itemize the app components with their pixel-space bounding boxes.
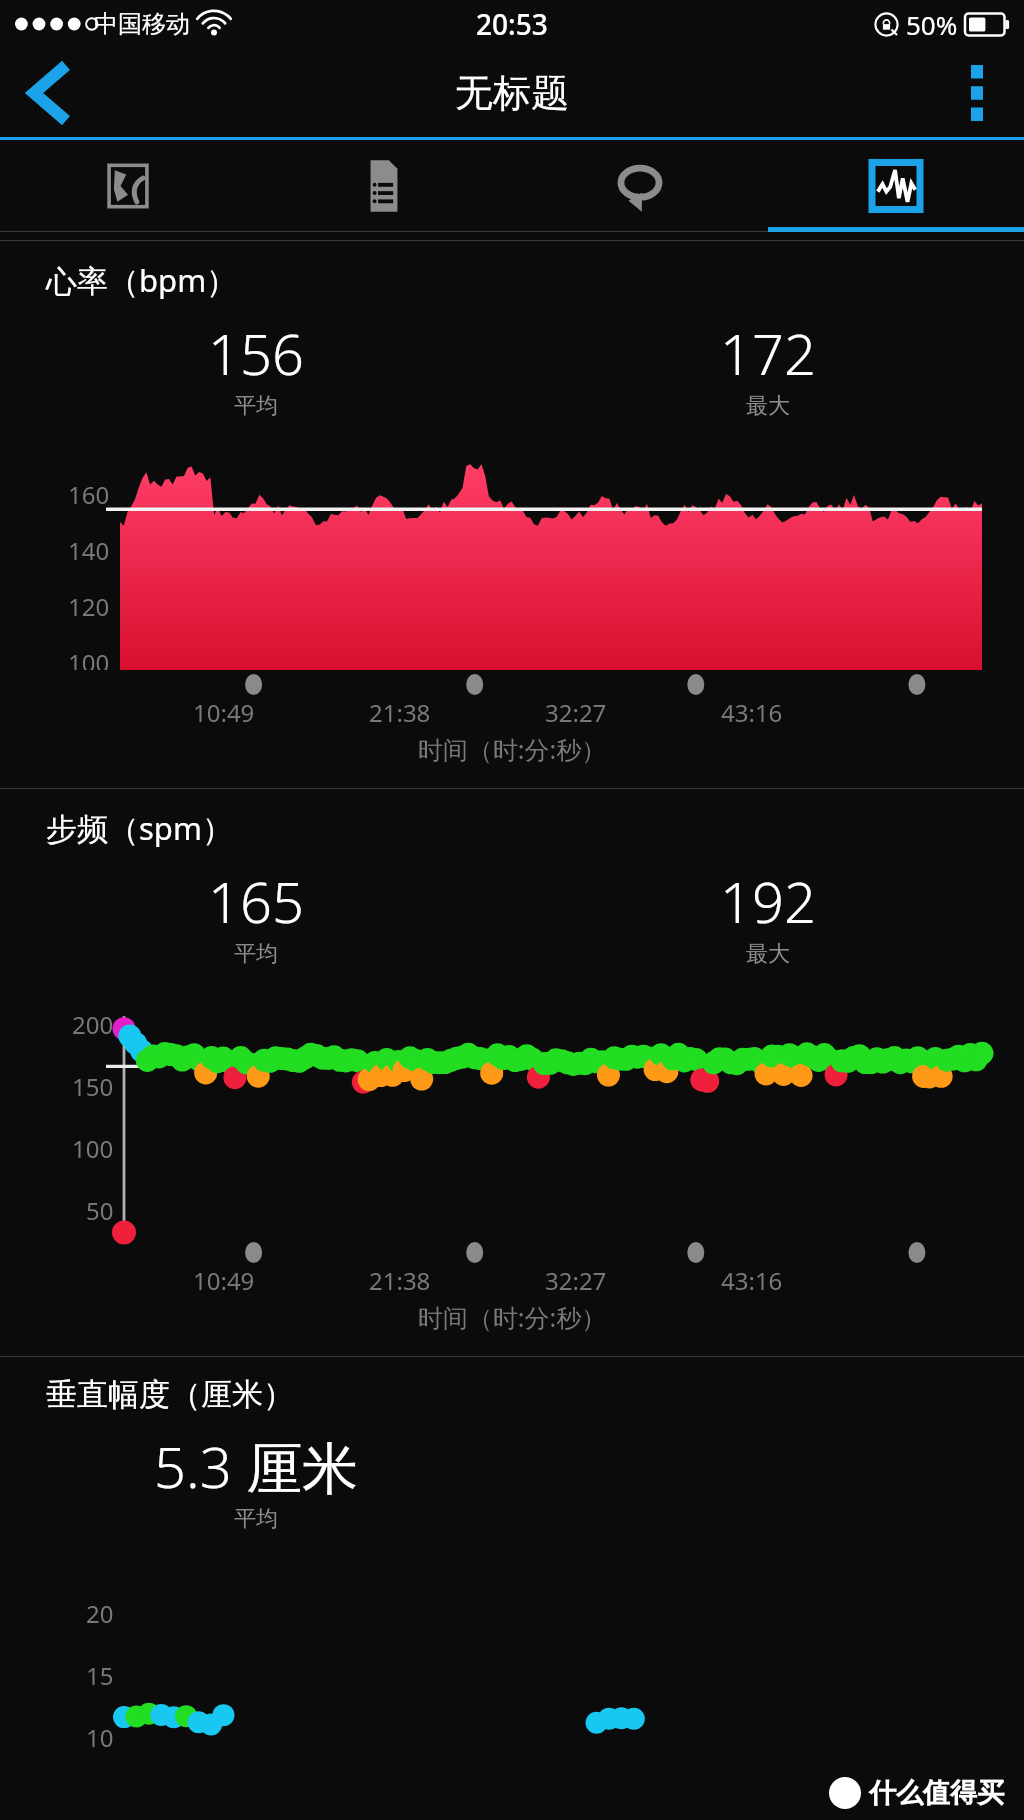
button[interactable]: More options <box>930 48 1024 137</box>
staticText: 165 <box>208 863 304 939</box>
staticText: 平均 <box>234 940 278 968</box>
staticText: 100 <box>68 646 110 670</box>
staticText: 中国移动 <box>94 9 190 39</box>
staticText: 10 <box>86 1721 114 1754</box>
button[interactable]: Details tab <box>256 140 512 232</box>
staticText: 时间（时:分:秒） <box>0 1300 1024 1334</box>
staticText: 时间（时:分:秒） <box>0 732 1024 766</box>
staticText: 160 <box>68 478 110 511</box>
staticText: 什么值得买 <box>869 1776 1004 1810</box>
staticText: 步频（spm） <box>46 807 233 849</box>
staticText: 5.3 厘米 <box>154 1428 359 1504</box>
button[interactable]: Laps tab <box>512 140 768 232</box>
staticText: 120 <box>68 590 110 623</box>
staticText: 10:49 <box>193 1264 255 1297</box>
staticText: 20 <box>86 1597 114 1630</box>
staticText: 50% <box>906 7 958 42</box>
staticText: 43:16 <box>721 696 783 729</box>
staticText: 21:38 <box>369 1264 431 1297</box>
staticText: 10:49 <box>193 696 255 729</box>
staticText: 心率（bpm） <box>46 259 238 301</box>
button[interactable]: Charts tab <box>768 140 1024 232</box>
staticText: 20:53 <box>476 5 548 43</box>
staticText: 平均 <box>234 1505 278 1533</box>
staticText: 43:16 <box>721 1264 783 1297</box>
button[interactable]: Map tab <box>0 140 256 232</box>
staticText: 32:27 <box>545 696 607 729</box>
staticText: 无标题 <box>455 69 569 117</box>
staticText: 192 <box>720 863 816 939</box>
button[interactable]: Back <box>0 48 100 137</box>
staticText: 平均 <box>234 392 278 420</box>
staticText: 32:27 <box>545 1264 607 1297</box>
staticText: 150 <box>72 1070 114 1103</box>
staticText: 垂直幅度（厘米） <box>46 1375 294 1414</box>
staticText: 140 <box>68 534 110 567</box>
staticText: 最大 <box>746 392 790 420</box>
staticText: 156 <box>208 315 304 391</box>
staticText: 最大 <box>746 940 790 968</box>
staticText: 21:38 <box>369 696 431 729</box>
staticText: 100 <box>72 1132 114 1165</box>
staticText: 50 <box>86 1194 114 1227</box>
staticText: 172 <box>720 315 816 391</box>
staticText: 200 <box>72 1008 114 1041</box>
staticText: 15 <box>86 1659 114 1692</box>
